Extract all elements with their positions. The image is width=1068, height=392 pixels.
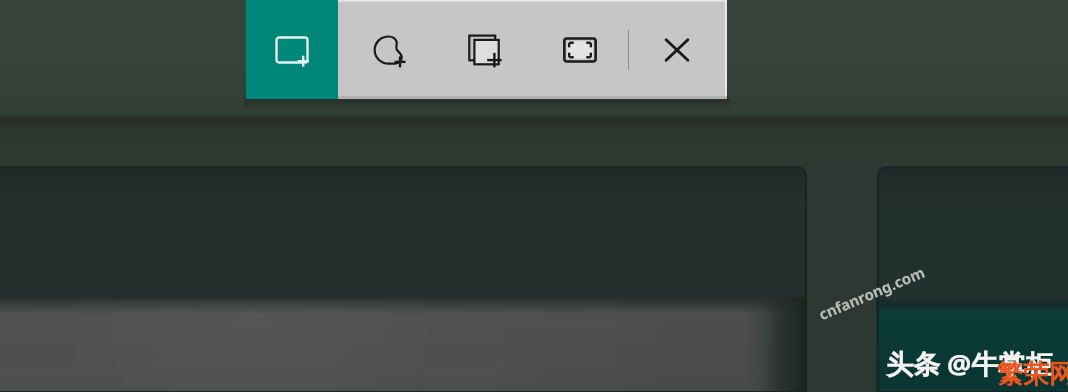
button[interactable]: Close <box>649 22 705 78</box>
button[interactable]: Rectangular snip <box>246 0 338 99</box>
staticText: 头条 @牛掌柜 <box>886 345 1053 382</box>
staticText: 繁荣网 <box>997 358 1068 391</box>
button[interactable]: Freeform snip <box>361 22 417 78</box>
button[interactable]: Full screen snip <box>552 22 608 78</box>
button[interactable]: Window snip <box>456 22 512 78</box>
staticText: cnfanrong.com <box>816 262 927 324</box>
